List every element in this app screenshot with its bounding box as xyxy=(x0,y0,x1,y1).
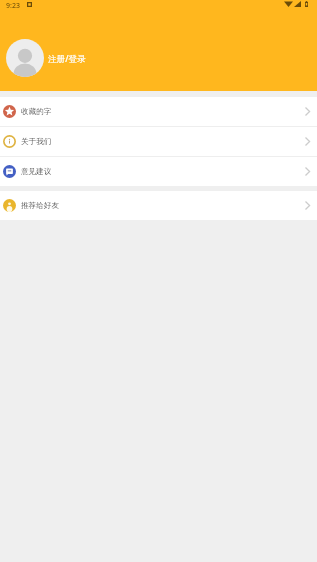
button[interactable]: 关于我们 xyxy=(0,127,317,156)
staticText: 收藏的字 xyxy=(21,107,52,117)
button[interactable]: 推荐给好友 xyxy=(0,191,317,220)
button[interactable]: 收藏的字 xyxy=(0,97,317,126)
staticText: 注册/登录 xyxy=(48,53,86,65)
staticText: 意见建议 xyxy=(21,167,52,177)
button[interactable]: 意见建议 xyxy=(0,157,317,186)
staticText: 关于我们 xyxy=(21,137,52,147)
staticText: 9:23 xyxy=(6,1,20,11)
staticText: 推荐给好友 xyxy=(21,201,59,211)
button[interactable]: 注册/登录 xyxy=(0,29,317,81)
